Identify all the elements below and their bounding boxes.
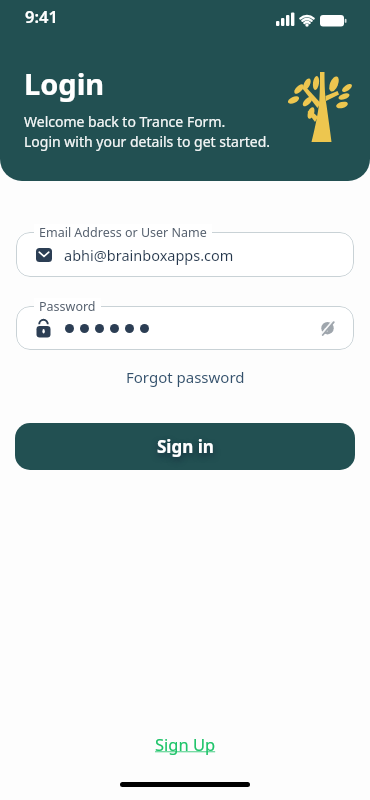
staticText: Sign in: [157, 435, 214, 458]
button[interactable]: Sign in: [15, 423, 355, 470]
button[interactable]: Forgot password: [126, 367, 245, 387]
staticText: Login: [24, 64, 105, 103]
staticText: Sign Up: [155, 733, 216, 755]
staticText: Forgot password: [126, 367, 245, 387]
staticText: Email Address or User Name: [39, 224, 207, 241]
button[interactable]: Sign Up: [155, 733, 216, 755]
button[interactable]: abhi@brainboxapps.com: [16, 232, 354, 277]
button[interactable]: [16, 306, 354, 350]
staticText: 9:41: [25, 5, 58, 27]
staticText: abhi@brainboxapps.com: [64, 245, 234, 265]
staticText: Welcome back to Trance Form. Login with …: [24, 112, 271, 151]
staticText: Password: [39, 298, 96, 315]
